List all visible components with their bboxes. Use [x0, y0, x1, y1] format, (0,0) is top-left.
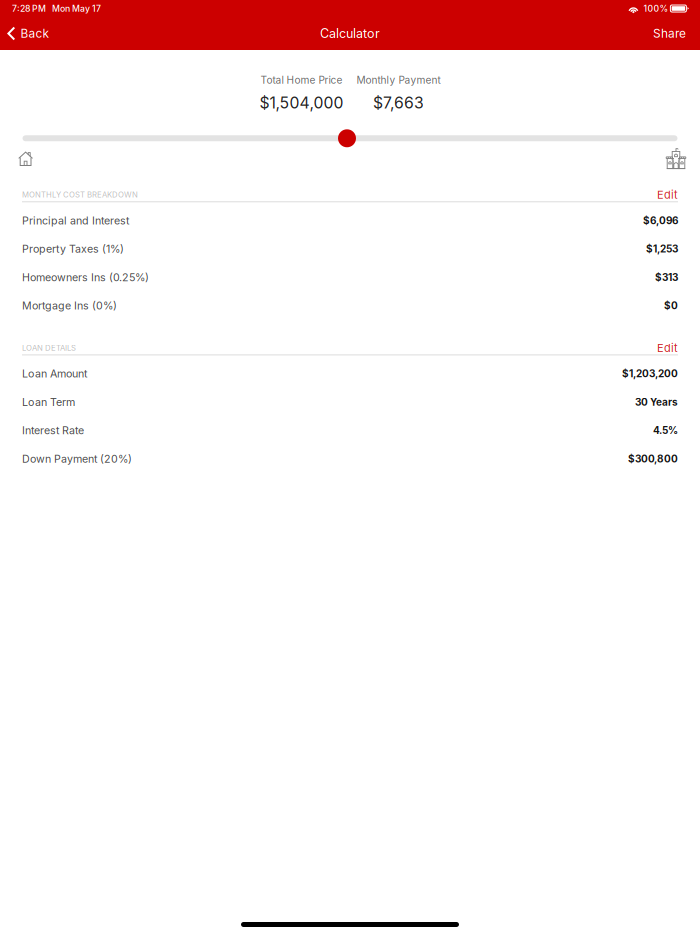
staticText: $313: [655, 271, 678, 283]
staticText: Share: [653, 26, 686, 41]
button[interactable]: Back: [0, 20, 60, 47]
staticText: $7,663: [373, 93, 424, 112]
staticText: Down Payment (20%): [22, 452, 132, 465]
staticText: 7:28 PM: [12, 3, 46, 14]
staticText: 100%: [643, 3, 668, 14]
staticText: Calculator: [320, 26, 380, 41]
staticText: 4.5%: [653, 424, 678, 436]
button[interactable]: Lowest price: [18, 151, 33, 166]
staticText: Edit: [657, 341, 678, 354]
staticText: $0: [664, 300, 678, 312]
button[interactable]: Edit: [657, 341, 678, 354]
staticText: $6,096: [643, 214, 678, 226]
staticText: LOAN DETAILS: [22, 343, 76, 353]
button[interactable]: Home price slider: [338, 129, 356, 147]
staticText: $1,504,000: [259, 93, 343, 112]
staticText: Total Home Price: [260, 74, 342, 86]
staticText: Interest Rate: [22, 424, 84, 437]
button[interactable]: Edit: [657, 188, 678, 201]
button[interactable]: Highest price: [665, 147, 687, 170]
staticText: Property Taxes (1%): [22, 242, 124, 255]
staticText: Loan Term: [22, 395, 75, 408]
staticText: Edit: [657, 188, 678, 201]
staticText: Mortgage Ins (0%): [22, 299, 117, 312]
staticText: Mon May 17: [52, 3, 101, 14]
staticText: Homeowners Ins (0.25%): [22, 271, 149, 284]
staticText: Principal and Interest: [22, 214, 129, 227]
staticText: $1,203,200: [622, 367, 678, 380]
staticText: $300,800: [628, 453, 678, 465]
staticText: 30 Years: [635, 396, 678, 408]
staticText: Monthly Payment: [356, 74, 440, 86]
staticText: $1,253: [646, 243, 678, 255]
staticText: MONTHLY COST BREAKDOWN: [22, 190, 138, 199]
staticText: Back: [21, 26, 50, 41]
button[interactable]: Share: [639, 20, 700, 47]
staticText: Loan Amount: [22, 367, 87, 380]
